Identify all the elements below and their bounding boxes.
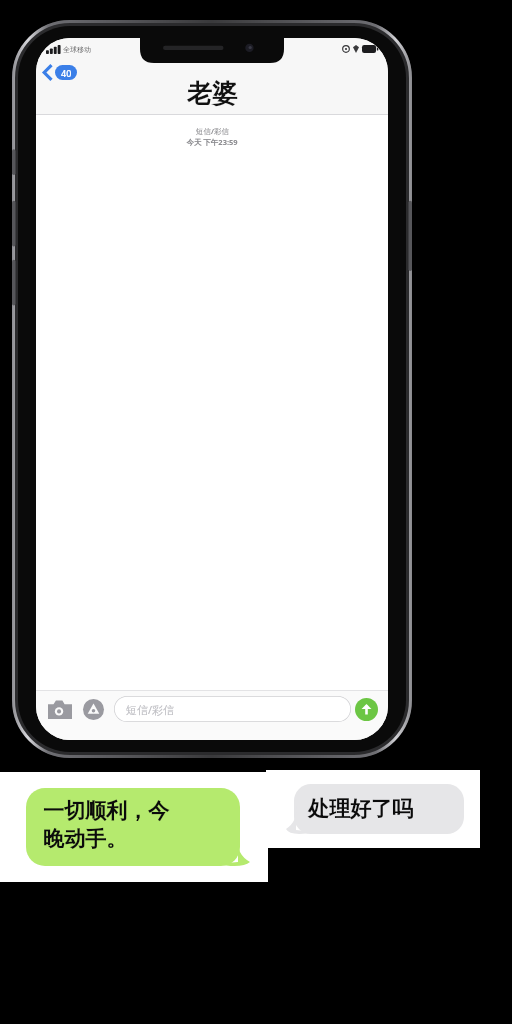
button[interactable]: 短信/彩信	[114, 696, 351, 722]
button[interactable]: 处理好了吗	[266, 770, 480, 848]
button[interactable]: Apps	[81, 697, 106, 722]
button[interactable]: 一切顺利，今	[0, 772, 268, 882]
staticText: 晚动手。	[43, 826, 127, 852]
button[interactable]: Back	[40, 62, 80, 83]
staticText: 短信/彩信	[196, 126, 229, 136]
staticText: 全球移动	[63, 45, 91, 54]
staticText: 短信/彩信	[126, 702, 175, 717]
staticText: 老婆	[187, 78, 237, 109]
staticText: 40	[61, 67, 72, 79]
button[interactable]: Send	[355, 698, 378, 721]
staticText: 处理好了吗	[308, 796, 413, 822]
staticText: 今天 下午23:59	[186, 137, 238, 147]
staticText: 一切顺利，今	[43, 798, 169, 824]
button[interactable]: Camera	[46, 698, 74, 721]
